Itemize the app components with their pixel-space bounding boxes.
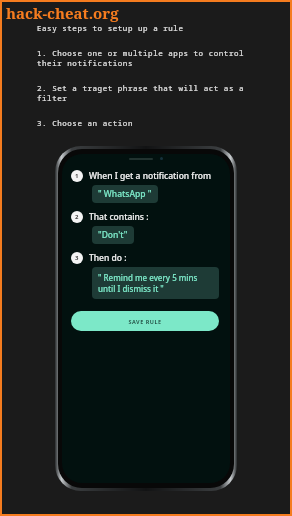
staticText: hack-cheat.org [6,3,119,23]
staticText: SAVE RULE [128,318,162,325]
staticText: "Don't" [98,229,128,241]
staticText: their notifications [37,58,133,68]
staticText: When I get a notification from [89,170,212,182]
staticText: 3. Choose an action [37,118,133,128]
staticText: filter [37,93,68,103]
staticText: " Remind me every 5 mins until I dismiss… [98,272,198,294]
button[interactable]: 1 [71,170,212,182]
staticText: 1 [75,172,79,180]
button[interactable]: " WhatsApp " [92,185,158,203]
staticText: 2 [75,213,79,221]
staticText: That contains : [89,211,149,223]
staticText: Easy steps to setup up a rule [37,23,184,33]
button[interactable]: " Remind me every 5 mins until I dismiss… [92,267,219,299]
button[interactable]: "Don't" [92,226,134,244]
staticText: 3 [75,254,79,262]
staticText: 1. Choose one or multiple apps to contro… [37,48,245,58]
staticText: Then do : [89,252,127,264]
staticText: " WhatsApp " [98,188,152,200]
button[interactable]: 2 [71,211,149,223]
button[interactable]: 3 [71,252,127,264]
staticText: 2. Set a traget phrase that will act as … [37,83,245,93]
button[interactable]: SAVE RULE [71,311,219,331]
